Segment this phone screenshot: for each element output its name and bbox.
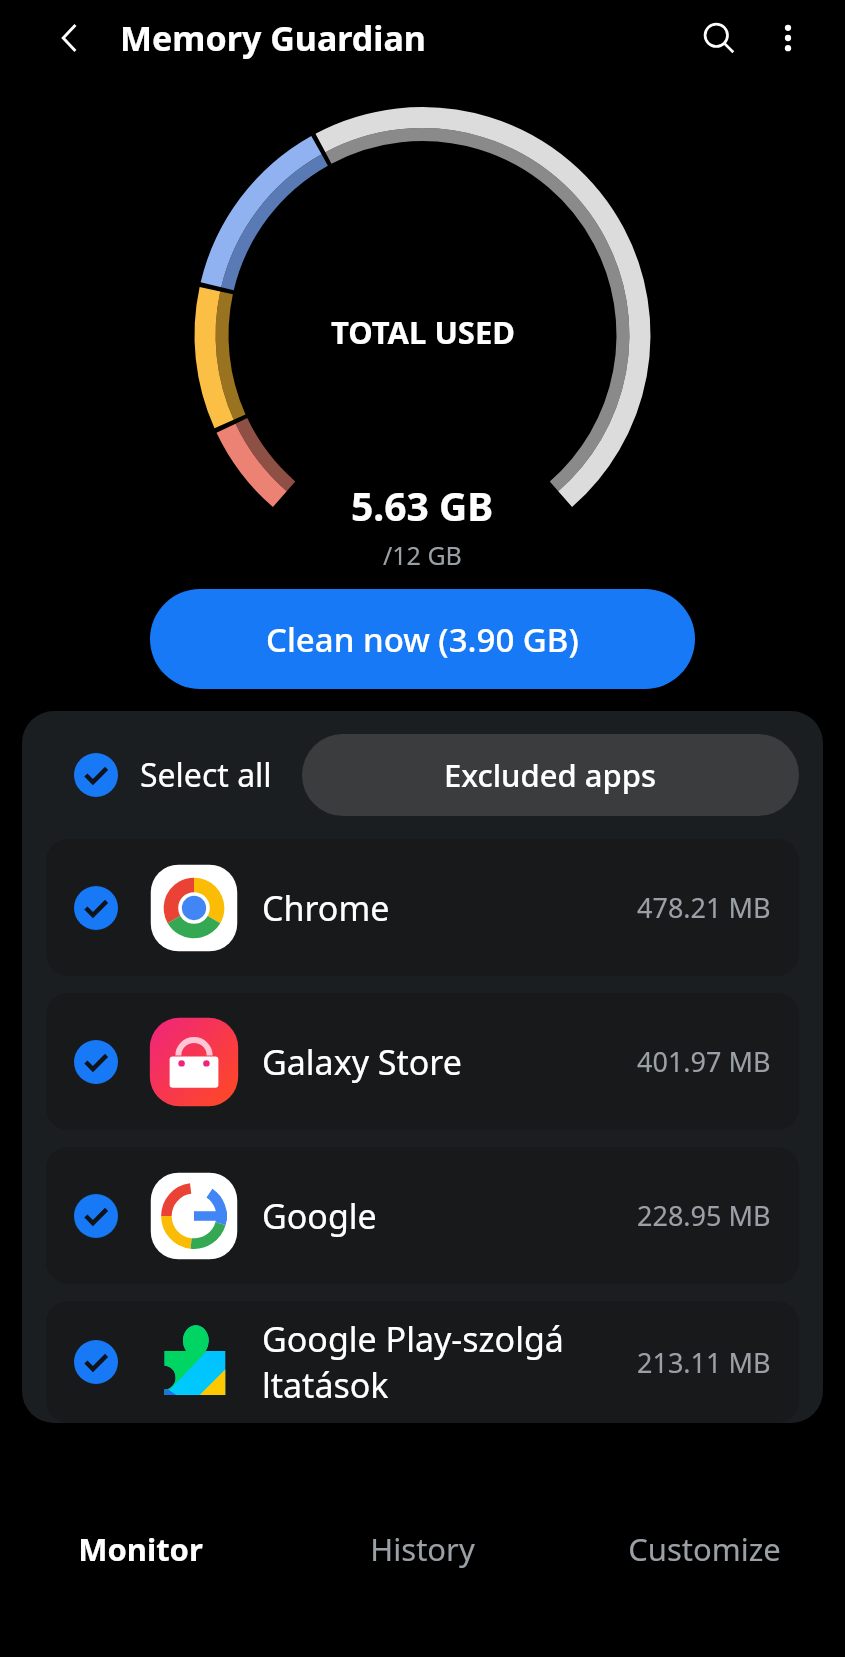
button[interactable]: Clean now (3.90 GB) (150, 589, 695, 689)
staticText: Customize (628, 1528, 781, 1570)
button[interactable]: Select all (22, 753, 280, 797)
button[interactable]: Customize (563, 1487, 845, 1657)
button[interactable]: Back (36, 4, 104, 72)
staticText: 478.21 MB (637, 889, 771, 926)
staticText: Monitor (78, 1528, 203, 1570)
button[interactable]: Chrome (46, 839, 799, 976)
button[interactable]: Excluded apps (302, 734, 799, 816)
button[interactable]: Google Play-szolgá ltatások (46, 1301, 799, 1423)
staticText: 401.97 MB (637, 1043, 771, 1080)
button[interactable]: Monitor (0, 1487, 281, 1657)
staticText: 228.95 MB (637, 1197, 771, 1234)
button[interactable]: History (281, 1487, 563, 1657)
staticText: Memory Guardian (120, 15, 426, 61)
button[interactable]: Google (46, 1147, 799, 1284)
button[interactable]: Search (683, 2, 755, 74)
staticText: 5.63 GB (351, 479, 494, 532)
staticText: Select all (140, 753, 272, 797)
button[interactable]: Galaxy Store (46, 993, 799, 1130)
staticText: Excluded apps (444, 754, 657, 796)
staticText: Galaxy Store (262, 1039, 629, 1085)
staticText: 213.11 MB (637, 1344, 771, 1381)
staticText: /12 GB (383, 538, 462, 572)
staticText: Chrome (262, 885, 629, 931)
button[interactable]: More options (755, 5, 821, 71)
staticText: History (370, 1528, 475, 1570)
staticText: Google Play-szolgá ltatások (262, 1316, 629, 1408)
staticText: Clean now (3.90 GB) (266, 617, 579, 662)
staticText: Google (262, 1193, 629, 1239)
staticText: TOTAL USED (331, 311, 515, 353)
